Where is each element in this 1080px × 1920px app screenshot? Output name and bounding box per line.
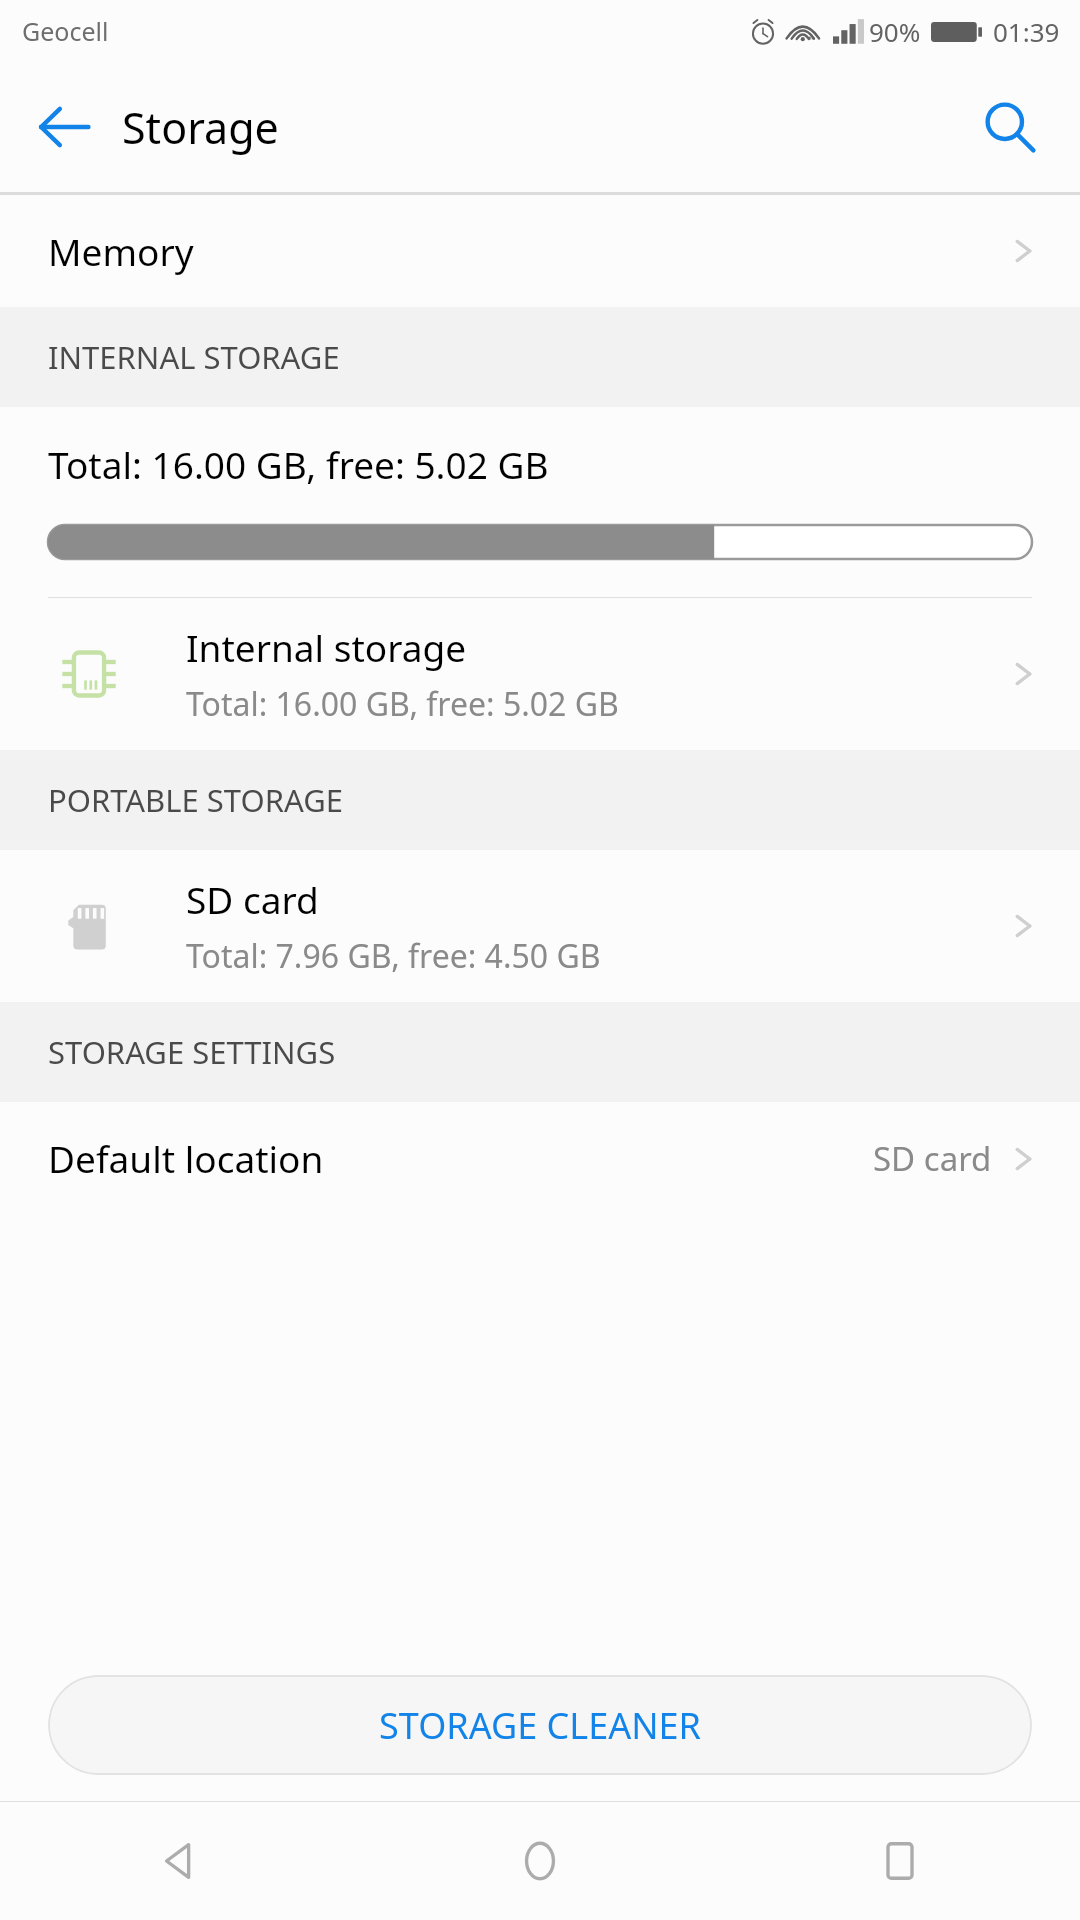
- staticText: SD card: [186, 874, 319, 924]
- button[interactable]: Memory: [0, 195, 1080, 307]
- staticText: Total: 16.00 GB, free: 5.02 GB: [48, 439, 549, 489]
- staticText: PORTABLE STORAGE: [48, 779, 343, 821]
- staticText: STORAGE CLEANER: [379, 1701, 701, 1750]
- staticText: Total: 16.00 GB, free: 5.02 GB: [186, 682, 619, 726]
- button[interactable]: Back: [0, 1802, 360, 1920]
- staticText: Storage: [122, 98, 279, 157]
- button[interactable]: Search: [974, 91, 1046, 163]
- button[interactable]: Default location: [0, 1102, 1080, 1214]
- staticText: Default location: [48, 1133, 324, 1183]
- staticText: 90%: [869, 14, 921, 49]
- staticText: STORAGE SETTINGS: [48, 1031, 336, 1073]
- staticText: SD card: [873, 1136, 992, 1181]
- button[interactable]: SD card: [0, 850, 1080, 1002]
- button[interactable]: Back: [28, 91, 100, 163]
- staticText: INTERNAL STORAGE: [48, 336, 340, 378]
- staticText: Total: 7.96 GB, free: 4.50 GB: [186, 934, 601, 978]
- staticText: 01:39: [993, 14, 1060, 49]
- button[interactable]: Recent apps: [720, 1802, 1080, 1920]
- button[interactable]: Home: [360, 1802, 720, 1920]
- button[interactable]: STORAGE CLEANER: [48, 1675, 1032, 1775]
- staticText: Internal storage: [186, 622, 467, 672]
- staticText: Memory: [48, 226, 194, 276]
- staticText: Geocell: [22, 14, 109, 48]
- button[interactable]: Internal storage: [0, 598, 1080, 750]
